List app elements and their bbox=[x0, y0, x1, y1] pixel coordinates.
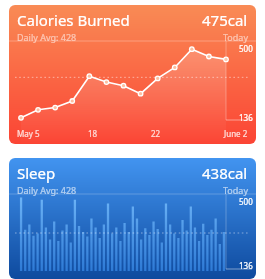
staticText: Sleep bbox=[17, 163, 56, 183]
staticText: 136 bbox=[239, 260, 253, 271]
staticText: Daily Avg: 428 bbox=[17, 184, 77, 196]
staticText: May 5 bbox=[17, 128, 40, 139]
staticText: Daily Avg: 428 bbox=[17, 31, 77, 43]
staticText: 136 bbox=[239, 112, 253, 123]
staticText: June 2 bbox=[224, 128, 248, 139]
staticText: Today bbox=[223, 31, 248, 43]
staticText: 438cal bbox=[202, 163, 248, 183]
staticText: 18 bbox=[88, 128, 98, 139]
button[interactable]: Sleep bbox=[9, 158, 256, 279]
staticText: Today bbox=[223, 184, 248, 196]
button[interactable]: Calories Burned bbox=[9, 5, 256, 144]
staticText: Calories Burned bbox=[17, 10, 130, 30]
staticText: 475cal bbox=[202, 10, 248, 30]
staticText: 22 bbox=[151, 128, 161, 139]
staticText: 500 bbox=[239, 196, 253, 207]
staticText: 500 bbox=[239, 43, 253, 54]
